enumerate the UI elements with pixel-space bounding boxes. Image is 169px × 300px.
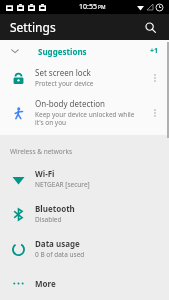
staticText: Keep your device unlocked while it's on … <box>35 110 143 127</box>
staticText: Suggestions <box>38 46 87 57</box>
button[interactable]: Data usage <box>0 231 169 266</box>
staticText: On-body detection <box>35 98 106 109</box>
staticText: Wireless & networks <box>10 147 72 156</box>
button[interactable]: Suggestions <box>0 40 169 62</box>
staticText: NETGEAR [secure] <box>35 180 90 189</box>
staticText: Set screen lock <box>35 67 91 78</box>
staticText: Bluetooth <box>35 203 75 214</box>
staticText: More <box>35 278 56 289</box>
staticText: Data usage <box>35 238 80 249</box>
staticText: 0 B of data used <box>35 250 85 259</box>
button[interactable]: More options <box>147 70 163 86</box>
button[interactable]: More options <box>147 105 163 121</box>
staticText: Wi-Fi <box>35 168 55 179</box>
staticText: Disabled <box>35 215 62 224</box>
button[interactable]: On-body detection <box>0 93 169 132</box>
staticText: PM <box>98 4 106 11</box>
staticText: 10:55 <box>79 2 97 12</box>
staticText: Settings <box>10 19 56 35</box>
staticText: +1 <box>150 46 159 56</box>
button[interactable]: Set screen lock <box>0 62 169 93</box>
button[interactable]: More <box>0 266 169 300</box>
button[interactable]: Search <box>139 16 161 38</box>
button[interactable]: Bluetooth <box>0 196 169 231</box>
button[interactable]: Wi-Fi <box>0 161 169 196</box>
staticText: Protect your device <box>35 79 94 88</box>
